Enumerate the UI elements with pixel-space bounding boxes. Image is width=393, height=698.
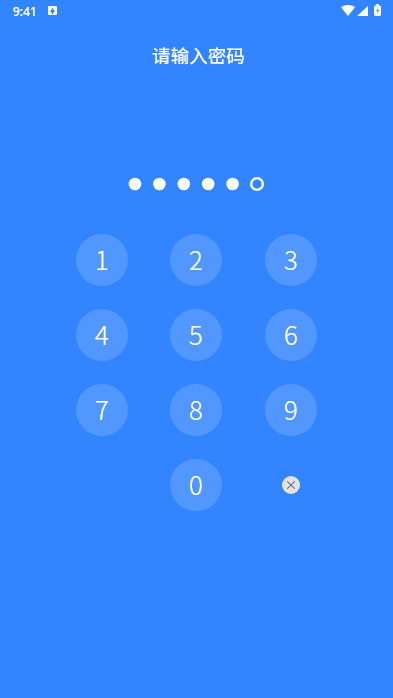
button[interactable]: 5: [170, 309, 222, 361]
staticText: 5: [189, 315, 203, 353]
button[interactable]: 4: [76, 309, 128, 361]
staticText: 请输入密码: [2, 42, 393, 69]
staticText: 2: [189, 240, 203, 278]
staticText: 8: [189, 390, 203, 428]
staticText: 1: [95, 240, 109, 278]
staticText: 9:41: [13, 3, 37, 19]
button[interactable]: 8: [170, 384, 222, 436]
staticText: 6: [284, 315, 298, 353]
button[interactable]: 0: [170, 459, 222, 511]
staticText: 3: [284, 240, 298, 278]
button[interactable]: 3: [265, 234, 317, 286]
button[interactable]: 9: [265, 384, 317, 436]
staticText: 9: [284, 390, 298, 428]
button[interactable]: 7: [76, 384, 128, 436]
staticText: 4: [95, 315, 109, 353]
button[interactable]: Delete: [265, 459, 317, 511]
staticText: 0: [189, 465, 203, 503]
button[interactable]: 6: [265, 309, 317, 361]
button[interactable]: 2: [170, 234, 222, 286]
button[interactable]: 1: [76, 234, 128, 286]
staticText: 7: [95, 390, 109, 428]
